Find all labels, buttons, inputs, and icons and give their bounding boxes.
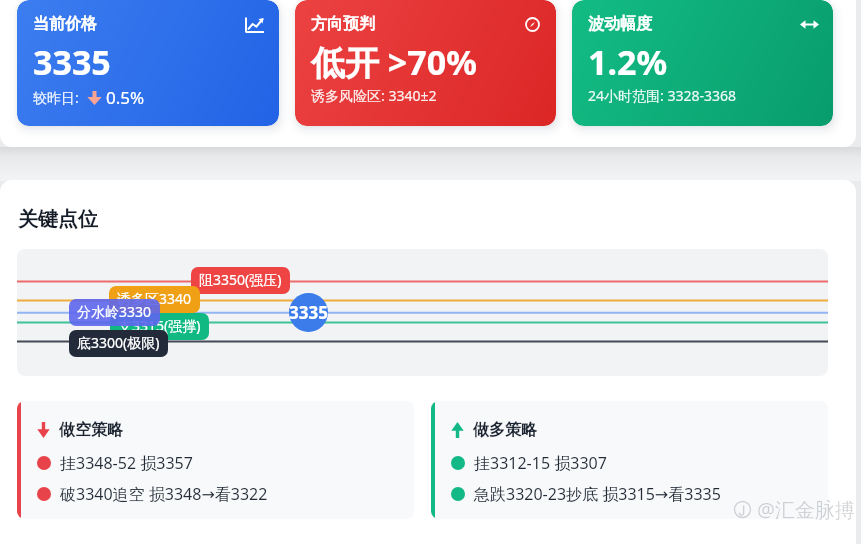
staticText: 做空策略 <box>59 420 123 440</box>
staticText: 破3340追空 损3348→看3322 <box>60 483 268 505</box>
staticText: 底3300(极限) <box>77 333 160 352</box>
staticText: 做多策略 <box>473 420 537 440</box>
staticText: 方向预判 <box>311 14 375 34</box>
staticText: 急跌3320-23抄底 损3315→看3335 <box>474 483 721 505</box>
staticText: 诱多风险区: 3340±2 <box>311 86 437 105</box>
staticText: 阻3350(强压) <box>199 270 282 289</box>
button[interactable]: 做多策略 <box>431 401 828 519</box>
staticText: 3335 <box>289 301 328 324</box>
staticText: 挂3312-15 损3307 <box>474 452 607 474</box>
staticText: 当前价格 <box>33 14 97 34</box>
button[interactable]: 当前价格 <box>17 0 279 126</box>
other: Direction <box>523 15 542 34</box>
staticText: 挂3348-52 损3357 <box>60 452 193 474</box>
staticText: 24小时范围: 3328-3368 <box>588 86 736 105</box>
staticText: 1.2% <box>588 39 668 85</box>
button[interactable]: 底3300(极限) <box>69 330 168 357</box>
button[interactable]: Watermark 汇金脉搏 <box>733 496 855 523</box>
staticText: 支3315(强撑) <box>118 316 201 335</box>
staticText: 3335 <box>33 39 111 85</box>
button[interactable]: 诱多区3340 <box>109 286 200 313</box>
other: Trend <box>246 15 265 34</box>
button[interactable]: 波动幅度 <box>572 0 833 126</box>
staticText: @汇金脉搏 <box>757 496 855 523</box>
button[interactable]: 阻3350(强压) <box>191 267 290 294</box>
staticText: 0.5% <box>106 86 145 109</box>
button[interactable]: 支3315(强撑) <box>110 313 209 340</box>
button[interactable]: 分水岭3330 <box>69 299 160 326</box>
staticText: 分水岭3330 <box>77 302 152 321</box>
button[interactable]: 方向预判 <box>295 0 556 126</box>
staticText: 较昨日: <box>33 88 79 107</box>
staticText: 低开 >70% <box>311 39 477 85</box>
button[interactable]: 做空策略 <box>17 401 414 519</box>
other: Range <box>800 15 819 34</box>
staticText: 关键点位 <box>18 207 98 232</box>
staticText: 诱多区3340 <box>117 289 192 308</box>
staticText: 波动幅度 <box>588 14 652 34</box>
